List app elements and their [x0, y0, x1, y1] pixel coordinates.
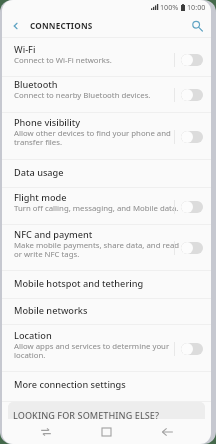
staticText: Connect to nearby Bluetooth devices.: [14, 90, 151, 101]
button[interactable]: LOOKING FOR SOMETHING ELSE?: [8, 402, 205, 419]
staticText: Phone visibility: [14, 116, 81, 129]
button[interactable]: Phone visibility: [2, 113, 211, 160]
staticText: More connection settings: [14, 378, 126, 391]
button[interactable]: Home: [76, 419, 137, 444]
button[interactable]: Search: [186, 15, 208, 37]
staticText: NFC and payment: [14, 228, 93, 241]
staticText: Data usage: [14, 166, 64, 179]
button[interactable]: Mobile hotspot and tethering: [2, 271, 211, 299]
staticText: 100%: [160, 2, 179, 12]
staticText: Allow other devices to find your phone a…: [14, 128, 183, 148]
staticText: LOOKING FOR SOMETHING ELSE?: [13, 409, 160, 419]
staticText: Bluetooth: [14, 78, 58, 91]
staticText: Location: [14, 329, 52, 342]
button[interactable]: Toggle switch: [179, 337, 211, 361]
button[interactable]: NFC and payment: [2, 225, 211, 271]
staticText: CONNECTIONS: [30, 20, 93, 31]
button[interactable]: Toggle switch: [179, 48, 211, 72]
button[interactable]: Toggle switch: [179, 236, 211, 260]
button[interactable]: Toggle switch: [179, 83, 211, 107]
button[interactable]: Flight mode: [2, 188, 211, 225]
button[interactable]: Wi-Fi: [2, 42, 211, 77]
button[interactable]: Bluetooth: [2, 77, 211, 113]
staticText: Make mobile payments, share data, and re…: [14, 240, 183, 260]
staticText: 10:00: [187, 2, 206, 12]
button[interactable]: Location: [2, 325, 211, 372]
button[interactable]: Toggle switch: [179, 125, 211, 149]
button[interactable]: More connection settings: [2, 372, 211, 402]
button[interactable]: Navigate up: [5, 15, 27, 37]
staticText: Turn off calling, messaging, and Mobile …: [14, 203, 179, 214]
staticText: Flight mode: [14, 191, 67, 204]
button[interactable]: Data usage: [2, 160, 211, 188]
staticText: Mobile hotspot and tethering: [14, 277, 144, 290]
button[interactable]: Toggle switch: [179, 195, 211, 219]
staticText: Wi-Fi: [14, 43, 36, 56]
staticText: Connect to Wi-Fi networks.: [14, 55, 112, 66]
staticText: Mobile networks: [14, 304, 88, 317]
button[interactable]: Recent apps: [15, 419, 76, 444]
button[interactable]: Mobile networks: [2, 299, 211, 325]
staticText: Allow apps and services to determine you…: [14, 341, 183, 361]
button[interactable]: Back: [137, 419, 198, 444]
